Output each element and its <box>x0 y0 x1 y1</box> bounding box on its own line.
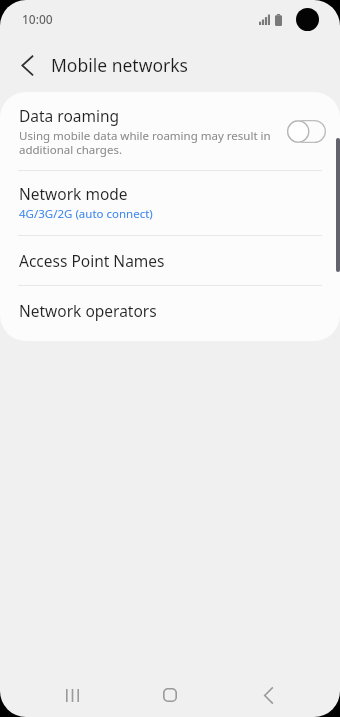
staticText: 4G/3G/2G (auto connect) <box>19 206 153 222</box>
button[interactable]: Network mode <box>0 171 340 235</box>
button[interactable]: Home <box>144 673 196 717</box>
staticText: Data roaming <box>19 105 120 126</box>
button[interactable]: Back <box>8 46 46 84</box>
button[interactable]: Data roaming toggle <box>287 120 326 143</box>
staticText: Using mobile data while roaming may resu… <box>19 128 279 157</box>
button[interactable]: Access Point Names <box>0 236 340 285</box>
staticText: Mobile networks <box>51 53 188 77</box>
button[interactable]: Recent apps <box>46 673 98 717</box>
button[interactable]: Network operators <box>0 286 340 335</box>
staticText: Network mode <box>19 183 128 204</box>
staticText: 10:00 <box>22 11 53 27</box>
staticText: Network operators <box>19 300 157 321</box>
staticText: Access Point Names <box>19 250 165 271</box>
button[interactable]: Data roaming <box>0 92 340 170</box>
button[interactable]: Back <box>242 673 294 717</box>
